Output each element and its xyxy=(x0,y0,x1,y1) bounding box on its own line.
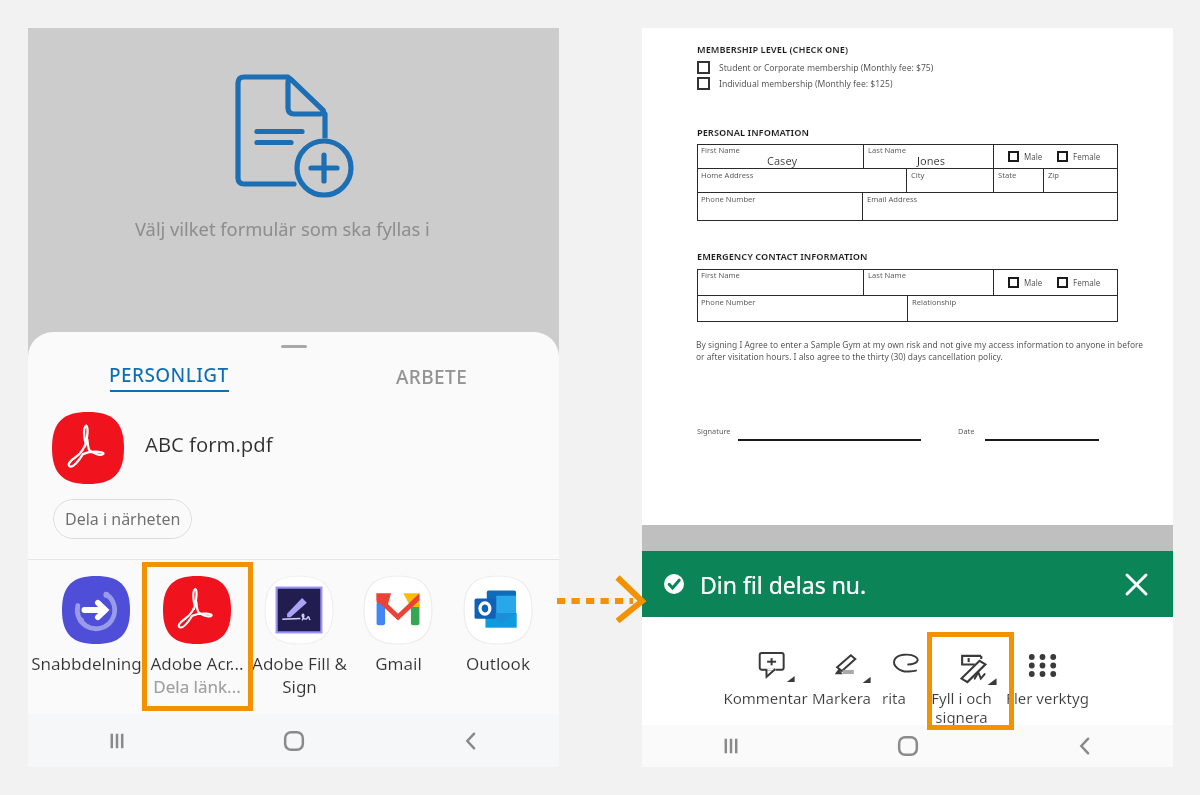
staticText: Zip xyxy=(1048,170,1059,180)
staticText: Adobe Acr... xyxy=(150,652,244,675)
staticText: Date xyxy=(958,426,975,436)
staticText: First Name xyxy=(701,270,740,280)
staticText: Jones xyxy=(917,153,945,168)
button[interactable]: Snabbdelning xyxy=(62,576,130,644)
button[interactable]: Recents xyxy=(642,725,819,767)
button[interactable]: ABC form.pdf xyxy=(28,400,559,495)
staticText: Casey xyxy=(767,153,797,168)
staticText: Fyll i och signera xyxy=(931,688,992,727)
button[interactable]: Dela i närheten xyxy=(53,499,192,539)
staticText: Male xyxy=(1024,151,1043,162)
staticText: Home Address xyxy=(701,170,754,180)
button[interactable]: Fyll i och signera xyxy=(955,653,997,685)
staticText: Fler verktyg xyxy=(1006,688,1089,708)
staticText: Outlook xyxy=(466,652,530,675)
staticText: or after visitation hours. I also agree … xyxy=(696,351,1003,363)
button[interactable]: Adobe Fill & Sign xyxy=(265,576,333,644)
staticText: Email Address xyxy=(867,194,918,204)
button[interactable]: Recents xyxy=(28,714,205,767)
button[interactable]: Adobe Acr... xyxy=(163,576,231,644)
staticText: First Name xyxy=(701,145,740,155)
staticText: ABC form.pdf xyxy=(145,430,273,458)
button[interactable]: Back xyxy=(996,725,1173,767)
button[interactable]: Fler verktyg xyxy=(1028,653,1057,678)
staticText: Female xyxy=(1073,277,1101,288)
staticText: Dela i närheten xyxy=(65,508,181,530)
staticText: ARBETE xyxy=(396,364,468,390)
staticText: Gmail xyxy=(375,652,422,675)
staticText: Last Name xyxy=(868,145,907,155)
staticText: Din fil delas nu. xyxy=(700,569,867,600)
staticText: Dela länk... xyxy=(153,675,241,698)
button[interactable]: rita xyxy=(892,653,922,675)
button[interactable]: Back xyxy=(382,714,559,767)
staticText: Individual membership (Monthly fee: $125… xyxy=(719,78,893,90)
staticText: Female xyxy=(1073,151,1101,162)
button[interactable]: ARBETE xyxy=(344,354,519,400)
staticText: EMERGENCY CONTACT INFORMATION xyxy=(697,250,868,263)
staticText: PERSONAL INFOMATION xyxy=(697,126,809,139)
button[interactable]: Outlook xyxy=(464,576,532,644)
button[interactable]: Markera xyxy=(834,653,871,683)
staticText: State xyxy=(998,170,1017,180)
staticText: Snabbdelning xyxy=(31,652,142,675)
staticText: Markera xyxy=(812,688,871,708)
staticText: Relationship xyxy=(912,297,957,307)
staticText: Student or Corporate membership (Monthly… xyxy=(719,62,934,74)
button[interactable]: Stäng xyxy=(1119,567,1153,601)
button[interactable]: Home xyxy=(205,714,382,767)
staticText: Kommentar xyxy=(723,688,808,708)
staticText: City xyxy=(911,170,925,180)
staticText: Välj vilket formulär som ska fyllas i xyxy=(135,216,430,241)
staticText: MEMBERSHIP LEVEL (CHECK ONE) xyxy=(697,43,849,56)
staticText: By signing I Agree to enter a Sample Gym… xyxy=(696,339,1144,351)
staticText: Phone Number xyxy=(701,297,756,307)
staticText: Male xyxy=(1024,277,1043,288)
button[interactable]: PERSONLIGT xyxy=(81,354,256,400)
button[interactable]: Kommentar xyxy=(759,653,795,682)
button[interactable]: Home xyxy=(819,725,996,767)
staticText: PERSONLIGT xyxy=(109,362,229,388)
staticText: rita xyxy=(882,688,906,708)
staticText: Signature xyxy=(697,426,731,436)
staticText: Last Name xyxy=(868,270,907,280)
button[interactable]: Gmail xyxy=(364,576,432,644)
staticText: Phone Number xyxy=(701,194,756,204)
staticText: Adobe Fill & Sign xyxy=(252,652,347,698)
